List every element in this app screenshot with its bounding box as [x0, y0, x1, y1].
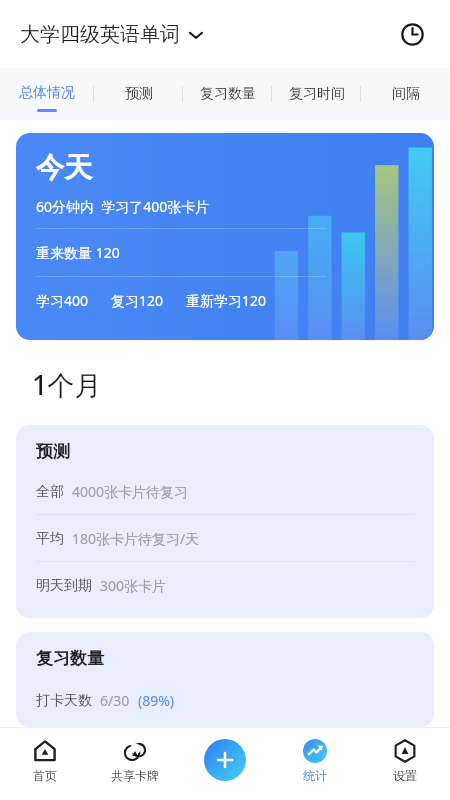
staticText: 设置: [393, 768, 417, 783]
button[interactable]: 共享卡牌: [90, 727, 180, 800]
staticText: 全部: [36, 483, 64, 501]
staticText: 平均: [36, 530, 64, 548]
button[interactable]: 首页: [0, 727, 90, 800]
button[interactable]: 复习时间: [272, 68, 361, 120]
staticText: 复习数量: [200, 85, 256, 103]
staticText: 预测: [125, 85, 153, 103]
staticText: 打卡天数: [36, 692, 92, 710]
staticText: 60分钟内 学习了400张卡片: [36, 197, 210, 216]
button[interactable]: 复习数量: [183, 68, 272, 120]
staticText: 共享卡牌: [111, 768, 159, 783]
staticText: (89%): [138, 691, 175, 710]
staticText: 4000张卡片待复习: [72, 482, 189, 501]
staticText: 复习数量: [36, 648, 104, 669]
staticText: 1个月: [32, 366, 102, 403]
button[interactable]: 总体情况: [0, 68, 94, 120]
button[interactable]: Add: [204, 739, 246, 781]
staticText: 6/30: [100, 691, 130, 710]
staticText: 180张卡片待复习/天: [72, 529, 200, 548]
staticText: 预测: [36, 441, 70, 462]
button[interactable]: 设置: [360, 727, 450, 800]
staticText: 间隔: [392, 85, 420, 103]
button[interactable]: History: [394, 16, 430, 52]
staticText: 今天: [36, 150, 92, 185]
button[interactable]: 今天: [16, 133, 434, 340]
staticText: 300张卡片: [100, 576, 167, 595]
staticText: 重新学习120: [186, 291, 267, 310]
button[interactable]: 间隔: [361, 68, 450, 120]
button[interactable]: 预测: [16, 425, 434, 618]
button[interactable]: 大学四级英语单词: [20, 16, 204, 53]
staticText: 重来数量 120: [36, 243, 120, 262]
button[interactable]: 统计: [270, 727, 360, 800]
staticText: 总体情况: [19, 84, 75, 102]
button[interactable]: 预测: [94, 68, 183, 120]
staticText: 明天到期: [36, 577, 92, 595]
staticText: 学习400: [36, 291, 89, 310]
staticText: 大学四级英语单词: [20, 22, 180, 47]
button[interactable]: 复习数量: [16, 632, 434, 727]
staticText: 复习120: [111, 291, 164, 310]
staticText: 首页: [33, 768, 57, 783]
staticText: 统计: [303, 768, 327, 783]
staticText: 复习时间: [289, 85, 345, 103]
